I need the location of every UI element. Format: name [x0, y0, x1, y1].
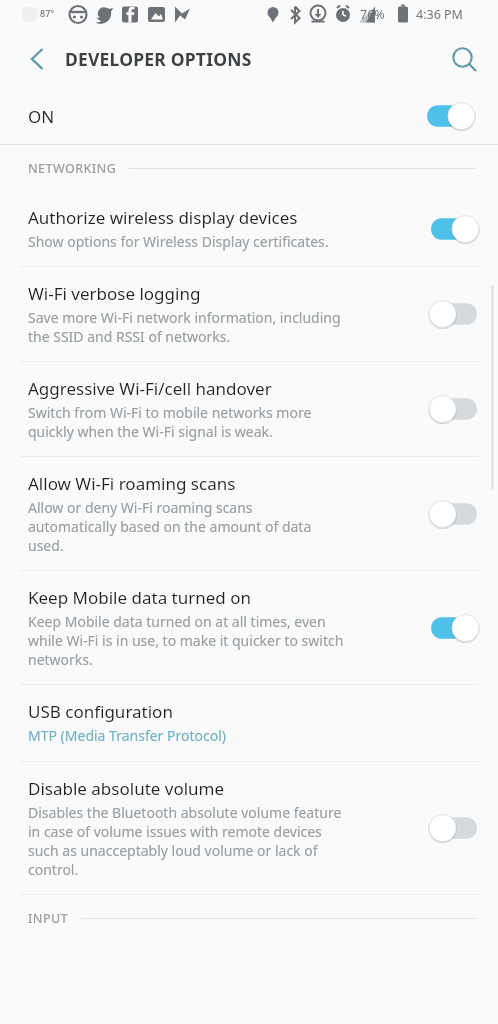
- button[interactable]: Keep Mobile data turned on: [0, 571, 498, 684]
- staticText: Allow or deny Wi-Fi roaming scans automa…: [28, 498, 312, 555]
- button[interactable]: USB configuration: [0, 685, 498, 761]
- staticText: NETWORKING: [28, 160, 117, 177]
- button[interactable]: Back: [12, 35, 60, 83]
- staticText: Aggressive Wi-Fi/cell handover: [28, 377, 272, 400]
- staticText: INPUT: [28, 910, 69, 927]
- staticText: 87°: [40, 7, 55, 19]
- staticText: USB configuration: [28, 700, 173, 723]
- button[interactable]: Search: [440, 35, 488, 83]
- button[interactable]: Off: [428, 499, 480, 529]
- staticText: MTP (Media Transfer Protocol): [28, 726, 227, 745]
- staticText: DEVELOPER OPTIONS: [65, 47, 252, 71]
- button[interactable]: On: [424, 101, 476, 131]
- staticText: Keep Mobile data turned on at all times,…: [28, 612, 344, 669]
- staticText: ON: [28, 105, 55, 128]
- staticText: Allow Wi-Fi roaming scans: [28, 472, 236, 495]
- button[interactable]: On: [428, 214, 480, 244]
- staticText: Disables the Bluetooth absolute volume f…: [28, 803, 342, 879]
- staticText: Show options for Wireless Display certif…: [28, 232, 329, 251]
- button[interactable]: Allow Wi-Fi roaming scans: [0, 457, 498, 570]
- button[interactable]: Off: [428, 813, 480, 843]
- button[interactable]: Off: [428, 299, 480, 329]
- button[interactable]: Disable absolute volume: [0, 762, 498, 894]
- button[interactable]: Wi-Fi verbose logging: [0, 267, 498, 361]
- staticText: Authorize wireless display devices: [28, 206, 298, 229]
- button[interactable]: Aggressive Wi-Fi/cell handover: [0, 362, 498, 456]
- staticText: 4:36 PM: [416, 6, 463, 23]
- button[interactable]: Off: [428, 394, 480, 424]
- staticText: Keep Mobile data turned on: [28, 586, 252, 609]
- staticText: Wi-Fi verbose logging: [28, 282, 201, 305]
- button[interactable]: Authorize wireless display devices: [0, 191, 498, 266]
- button[interactable]: ON: [0, 88, 498, 144]
- staticText: Switch from Wi-Fi to mobile networks mor…: [28, 403, 312, 441]
- staticText: 76%: [360, 6, 385, 23]
- button[interactable]: On: [428, 613, 480, 643]
- staticText: Save more Wi-Fi network information, inc…: [28, 308, 341, 346]
- staticText: Disable absolute volume: [28, 777, 225, 800]
